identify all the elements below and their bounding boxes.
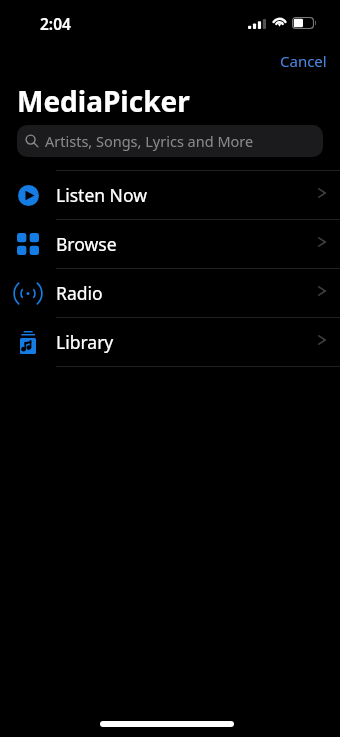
staticText: Library <box>56 330 114 354</box>
button[interactable]: Radio <box>0 269 340 317</box>
button[interactable]: Cancel <box>268 46 339 76</box>
staticText: Artists, Songs, Lyrics and More <box>45 131 254 151</box>
button[interactable]: Listen Now <box>0 171 340 219</box>
staticText: Cancel <box>280 51 327 71</box>
button[interactable]: Library <box>0 318 340 366</box>
staticText: Browse <box>56 232 117 256</box>
staticText: MediaPicker <box>17 82 190 120</box>
staticText: 2:04 <box>40 13 71 34</box>
button[interactable]: Artists, Songs, Lyrics and More <box>17 125 323 157</box>
staticText: Listen Now <box>56 183 147 207</box>
button[interactable]: Browse <box>0 220 340 268</box>
staticText: Radio <box>56 281 103 305</box>
